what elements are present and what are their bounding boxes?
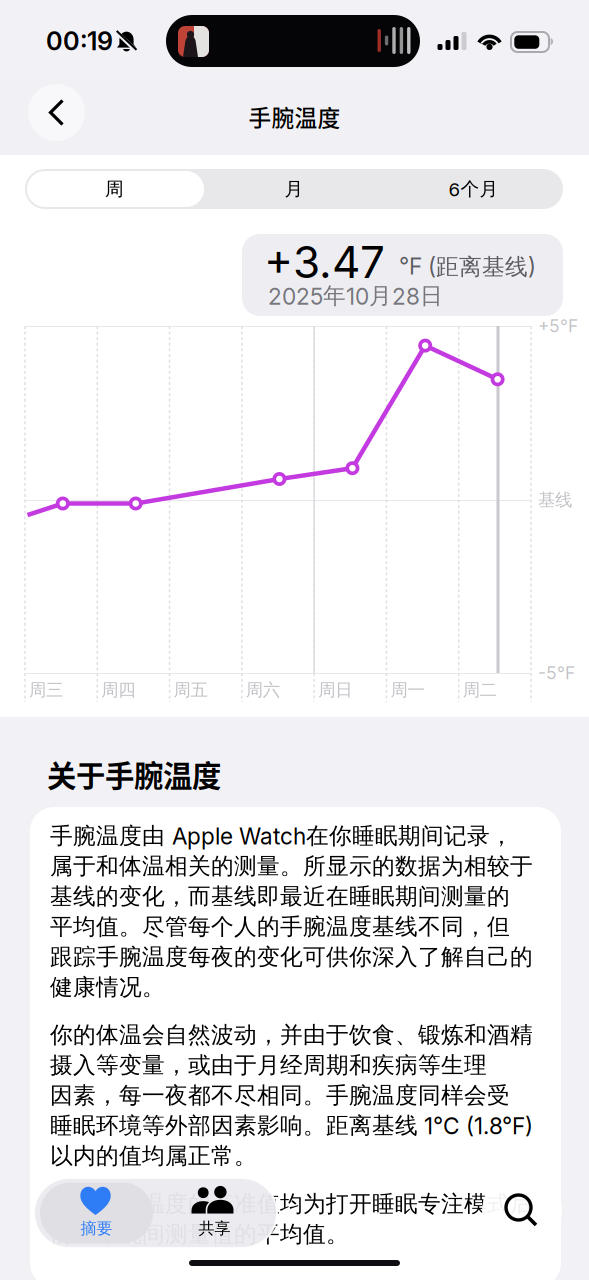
staticText: 共享 <box>198 1219 230 1238</box>
staticText: °F (距离基线) <box>399 253 536 281</box>
staticText: 摘要 <box>80 1219 112 1238</box>
staticText: 手腕温度由 Apple Watch在你睡眠期间记录， 属于和体温相关的测量。所显… <box>50 822 533 1001</box>
staticText: 6个月 <box>448 177 498 200</box>
button[interactable]: 月 <box>204 169 384 209</box>
staticText: 周一 <box>390 679 424 701</box>
staticText: -5°F <box>538 663 575 683</box>
button[interactable]: Back <box>28 84 85 141</box>
staticText: 基线 <box>538 489 572 511</box>
staticText: 手腕温度 <box>248 100 340 133</box>
button[interactable]: 周 <box>25 169 204 209</box>
staticText: 你的体温会自然波动，并由于饮食、锻炼和酒精 摄入等变量，或由于月经周期和疾病等生… <box>50 1021 533 1170</box>
button[interactable]: 共享 <box>158 1182 271 1243</box>
staticText: 周五 <box>174 679 208 701</box>
staticText: 周 <box>105 177 124 200</box>
staticText: 周二 <box>463 679 497 701</box>
staticText: 周六 <box>246 679 280 701</box>
staticText: +5°F <box>538 316 578 336</box>
staticText: 周三 <box>29 679 63 701</box>
staticText: 00:19 <box>46 26 113 56</box>
staticText: 关于手腕温度 <box>47 753 221 795</box>
staticText: 周日 <box>318 679 352 701</box>
button[interactable]: 摘要 <box>40 1182 153 1243</box>
staticText: +3.47 <box>264 236 385 288</box>
button[interactable]: Search <box>482 1171 562 1251</box>
staticText: 月 <box>284 177 303 200</box>
staticText: 周四 <box>101 679 135 701</box>
staticText: 2025年10月28日 <box>268 282 443 310</box>
button[interactable]: 6个月 <box>384 169 563 209</box>
staticText: 晚间手腕温度的基准值均为打开睡眠专注模式后 前五个晚间测量值的平均值。 <box>50 1190 533 1248</box>
